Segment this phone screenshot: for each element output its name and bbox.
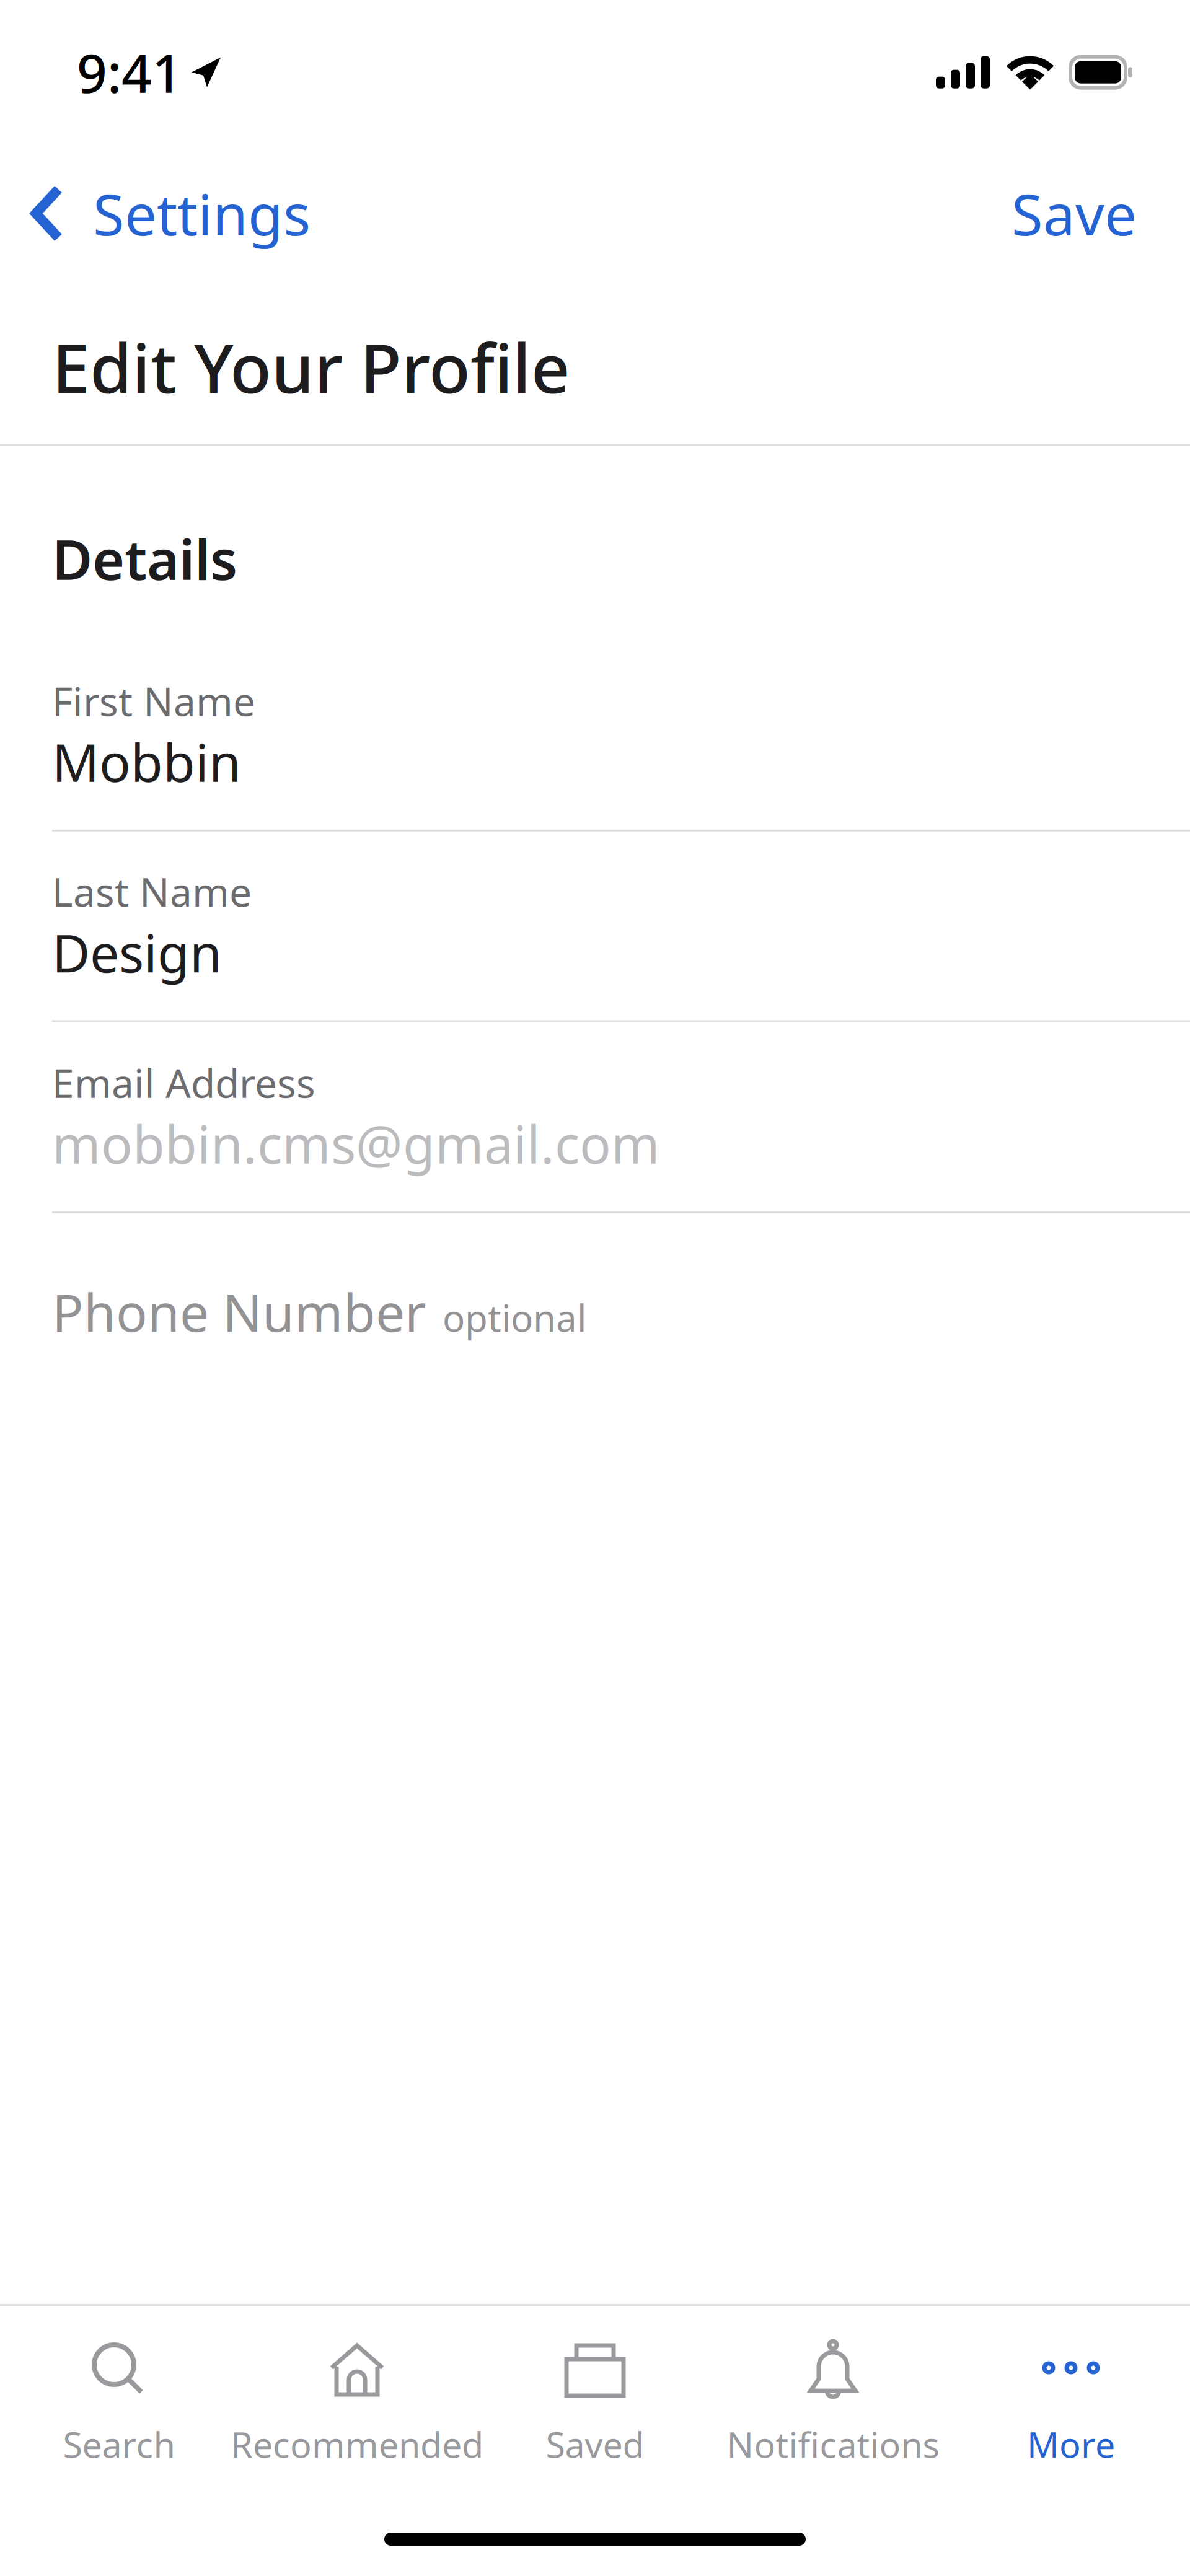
staticText: Saved (546, 2420, 644, 2468)
button[interactable]: Email Address (0, 1022, 1190, 1211)
button[interactable]: Saved (476, 2306, 714, 2468)
staticText: mobbin.cms@gmail.com (52, 1109, 660, 1178)
staticText: Email Address (52, 1056, 315, 1109)
staticText: Last Name (52, 865, 252, 918)
button[interactable]: Settings (0, 167, 325, 260)
staticText: Edit Your Profile (52, 322, 570, 412)
button[interactable]: Last Name (0, 831, 1190, 1020)
staticText: Design (52, 918, 222, 987)
staticText: Save (1011, 176, 1137, 251)
staticText: Search (63, 2420, 175, 2468)
button[interactable]: Phone Number (0, 1213, 1190, 1377)
staticText: Details (52, 522, 237, 595)
staticText: More (1027, 2420, 1115, 2468)
staticText: Notifications (727, 2420, 939, 2468)
button[interactable]: Recommended (238, 2306, 476, 2468)
button[interactable]: Notifications (714, 2306, 952, 2468)
button[interactable]: Search (0, 2306, 238, 2468)
staticText: Phone Number (52, 1277, 426, 1346)
staticText: Recommended (231, 2420, 483, 2468)
staticText: optional (443, 1293, 586, 1342)
staticText: Settings (93, 176, 311, 251)
button[interactable]: More (952, 2306, 1190, 2468)
button[interactable]: First Name (0, 674, 1190, 830)
button[interactable]: Save (995, 167, 1153, 260)
staticText: 9:41 (77, 37, 182, 107)
staticText: Mobbin (52, 727, 241, 796)
staticText: First Name (52, 674, 255, 727)
